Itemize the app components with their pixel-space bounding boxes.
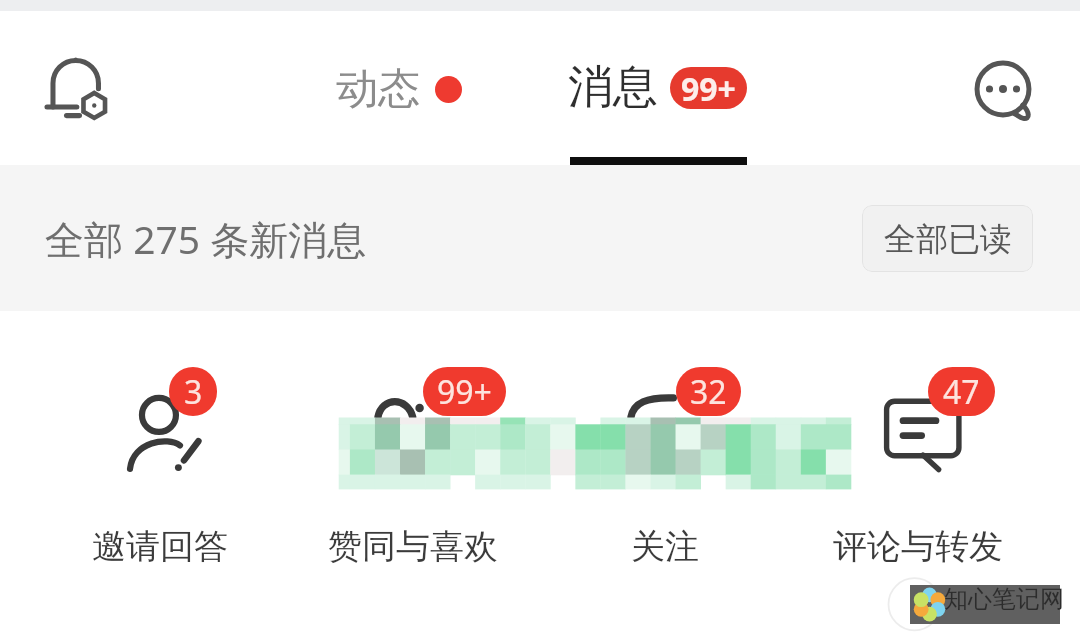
button[interactable]: 评论与转发	[808, 360, 1028, 570]
button[interactable]: Notification settings	[30, 46, 130, 146]
button[interactable]: 邀请回答	[50, 360, 270, 570]
staticText: 邀请回答	[92, 525, 228, 568]
button[interactable]: 动态	[336, 63, 462, 116]
button[interactable]: 赞同与喜欢	[303, 360, 523, 570]
button[interactable]: 消息	[568, 59, 747, 116]
button[interactable]: More options	[955, 46, 1051, 142]
staticText: 知心笔记网	[944, 584, 1064, 614]
staticText: 47	[943, 370, 980, 414]
staticText: 32	[690, 370, 727, 414]
staticText: 评论与转发	[833, 525, 1003, 568]
button[interactable]: 全部已读	[862, 205, 1033, 272]
staticText: 赞同与喜欢	[328, 525, 498, 568]
staticText: 3	[184, 370, 203, 414]
staticText: 全部 275 条新消息	[45, 212, 367, 265]
staticText: 99+	[437, 370, 492, 414]
button[interactable]: 关注	[555, 360, 775, 570]
staticText: 99+	[681, 67, 736, 109]
staticText: 全部已读	[884, 219, 1012, 259]
staticText: 动态	[336, 63, 420, 116]
staticText: 消息	[568, 59, 658, 116]
staticText: 关注	[631, 525, 699, 568]
